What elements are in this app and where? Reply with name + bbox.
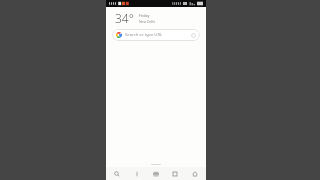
staticText: New Delhi [139,19,156,24]
staticText: Search or type URL [125,32,163,38]
staticText: 34° [115,10,134,26]
button[interactable]: Menu [148,167,164,180]
button[interactable]: 34° [115,10,197,26]
button[interactable]: Tabs [129,167,145,180]
staticText: Friday [139,13,150,18]
button[interactable]: Search [109,167,125,180]
button[interactable]: Recents [167,167,183,180]
button[interactable]: Search or type URL [112,29,200,41]
button[interactable]: Home [187,167,203,180]
